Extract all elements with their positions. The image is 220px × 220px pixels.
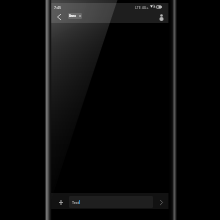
staticText: Text (72, 200, 80, 205)
button[interactable]: Back (53, 10, 65, 23)
button[interactable]: Add attachment (55, 196, 67, 208)
staticText: LTE 4G+ (135, 5, 149, 10)
button[interactable]: Anna (68, 13, 82, 19)
staticText: Anna (69, 14, 76, 18)
button[interactable]: Send (155, 196, 167, 208)
staticText: 7:45 (54, 5, 62, 10)
button[interactable]: Text (69, 196, 153, 208)
button[interactable]: Contacts (155, 10, 167, 23)
